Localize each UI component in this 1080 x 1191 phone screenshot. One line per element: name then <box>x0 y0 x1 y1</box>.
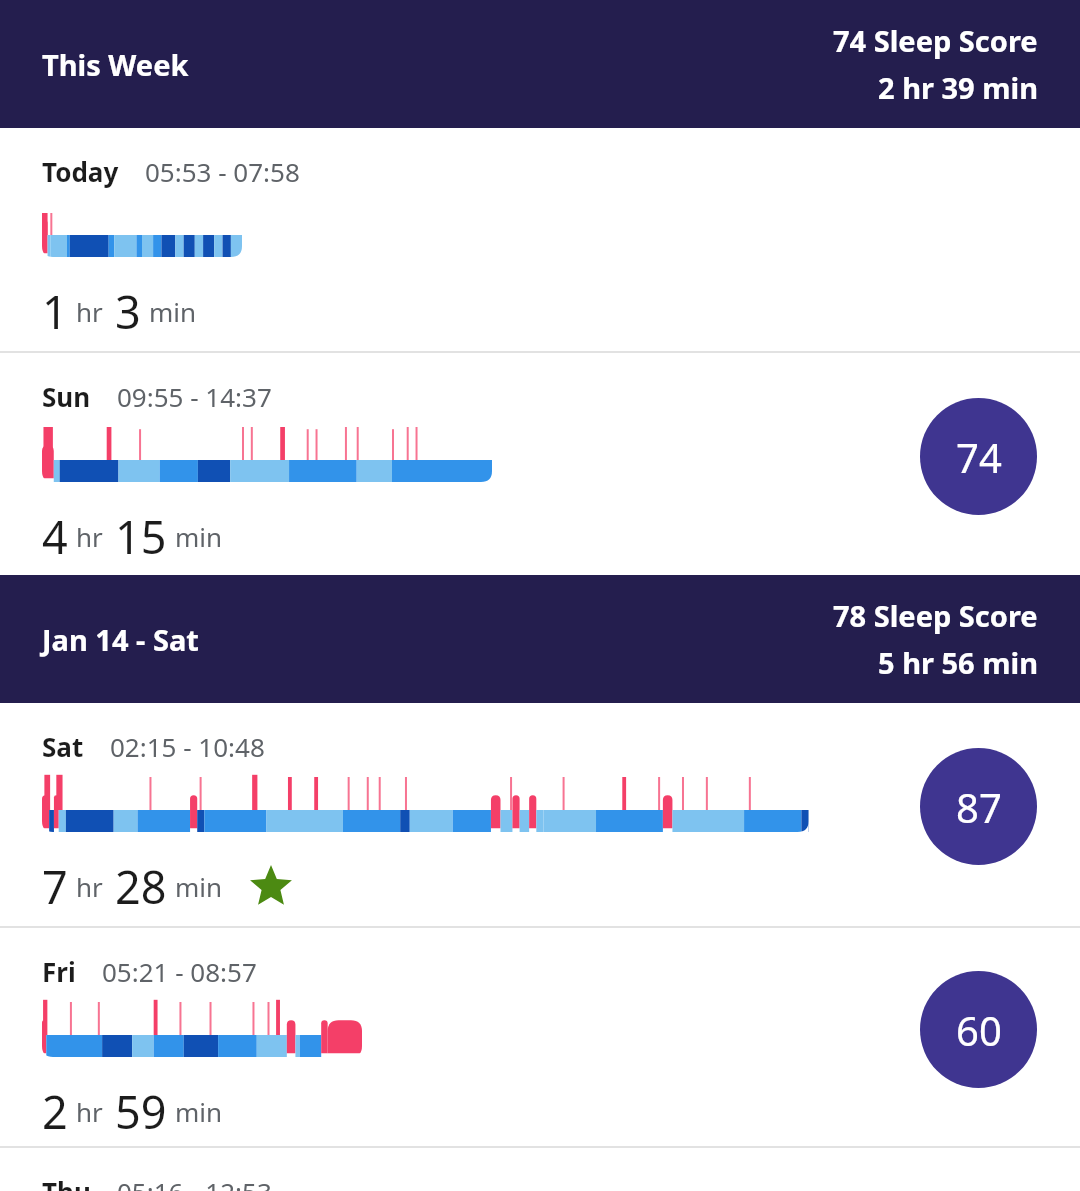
staticText: 1 <box>42 281 68 342</box>
staticText: Thu <box>42 1174 91 1191</box>
staticText: 2 hr 39 min <box>878 68 1038 107</box>
staticText: hr <box>76 294 103 329</box>
staticText: min <box>175 1094 223 1129</box>
button[interactable]: 87 <box>920 748 1037 865</box>
staticText: Fri <box>42 954 76 989</box>
button[interactable]: Today <box>0 128 1080 351</box>
button[interactable]: Sun <box>0 353 1080 575</box>
staticText: Sat <box>42 729 84 764</box>
button[interactable]: Fri <box>0 928 1080 1146</box>
staticText: 05:21 - 08:57 <box>102 954 257 989</box>
staticText: 09:55 - 14:37 <box>117 379 272 414</box>
button[interactable]: Jan 14 - Sat <box>0 575 1080 703</box>
staticText: Jan 14 - Sat <box>42 620 199 659</box>
staticText: 7 <box>42 856 68 917</box>
other: Goal met <box>249 865 293 909</box>
button[interactable]: 74 <box>920 398 1037 515</box>
staticText: min <box>175 519 223 554</box>
button[interactable]: Thu <box>0 1148 1080 1191</box>
staticText: 59 <box>115 1081 167 1142</box>
staticText: This Week <box>42 45 189 84</box>
staticText: Sun <box>42 379 91 414</box>
staticText: 02:15 - 10:48 <box>110 729 265 764</box>
staticText: 15 <box>115 506 167 567</box>
button[interactable]: Sat <box>0 703 1080 926</box>
button[interactable]: This Week <box>0 0 1080 128</box>
staticText: 60 <box>956 1003 1002 1057</box>
staticText: 78 Sleep Score <box>833 596 1038 635</box>
staticText: 74 <box>956 430 1002 484</box>
staticText: 28 <box>115 856 167 917</box>
staticText: 5 hr 56 min <box>878 643 1038 682</box>
staticText: min <box>175 869 223 904</box>
staticText: min <box>149 294 197 329</box>
staticText: 87 <box>956 780 1002 834</box>
staticText: hr <box>76 1094 103 1129</box>
staticText: Today <box>42 154 119 189</box>
staticText: 05:53 - 07:58 <box>145 154 300 189</box>
staticText: hr <box>76 869 103 904</box>
staticText: 05:16 - 12:53 <box>117 1174 272 1191</box>
staticText: 74 Sleep Score <box>833 21 1038 60</box>
button[interactable]: 60 <box>920 971 1037 1088</box>
staticText: 4 <box>42 506 68 567</box>
staticText: 2 <box>42 1081 68 1142</box>
staticText: 3 <box>115 281 141 342</box>
staticText: hr <box>76 519 103 554</box>
